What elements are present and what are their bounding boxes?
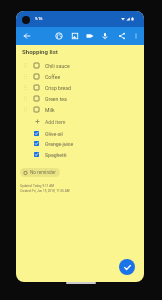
staticText: Shopping list	[22, 48, 58, 55]
staticText: Milk	[45, 107, 55, 113]
staticText: Coffee	[45, 74, 61, 80]
button[interactable]: Spaghetti	[16, 149, 144, 160]
staticText: Spaghetti	[45, 152, 67, 158]
staticText: No reminder	[30, 170, 56, 176]
staticText: Created: Fri, Jun 15, 2018, 11:36 AM	[20, 189, 70, 193]
button[interactable]: Share	[114, 27, 129, 45]
button[interactable]: Milk	[16, 104, 144, 115]
button[interactable]: Add image	[67, 27, 82, 45]
staticText: Add item	[45, 119, 66, 125]
button[interactable]: Olive oil	[16, 128, 144, 139]
staticText: 9:16	[35, 16, 43, 20]
staticText: Green tea	[45, 96, 67, 102]
button[interactable]: Green tea	[16, 93, 144, 104]
staticText: Orange juice	[45, 141, 74, 147]
button[interactable]: Crisp bread	[16, 82, 144, 93]
staticText: Updated: Today, 9:11 AM	[20, 184, 55, 188]
button[interactable]: No reminder	[20, 168, 60, 177]
button[interactable]: More options	[128, 27, 143, 45]
button[interactable]: Coffee	[16, 71, 144, 82]
staticText: Chili sauce	[45, 63, 70, 69]
button[interactable]: Change colour	[51, 27, 66, 45]
staticText: Olive oil	[45, 131, 63, 137]
button[interactable]: Chili sauce	[16, 60, 144, 71]
staticText: Crisp bread	[45, 85, 71, 91]
button[interactable]: Orange juice	[16, 138, 144, 149]
button[interactable]: Add item	[16, 116, 144, 127]
button[interactable]: Back	[19, 27, 34, 45]
button[interactable]: Label	[82, 27, 97, 45]
button[interactable]: Record audio	[97, 27, 112, 45]
button[interactable]: Done	[119, 259, 135, 275]
